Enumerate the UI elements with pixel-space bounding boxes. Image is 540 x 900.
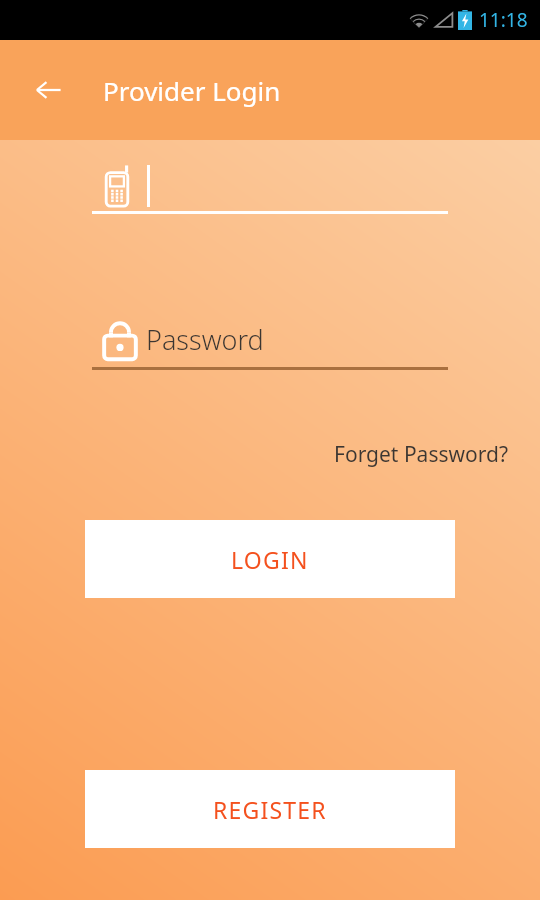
button[interactable]: Back [22,64,74,116]
staticText: Password [146,321,264,358]
staticText: 11:18 [479,7,528,33]
staticText: LOGIN [231,544,309,575]
staticText: Provider Login [103,73,281,108]
button[interactable]: Forget Password? [300,440,508,469]
staticText: REGISTER [213,794,327,825]
button[interactable]: REGISTER [85,770,455,848]
staticText: Forget Password? [334,440,508,469]
button[interactable]: LOGIN [85,520,455,598]
